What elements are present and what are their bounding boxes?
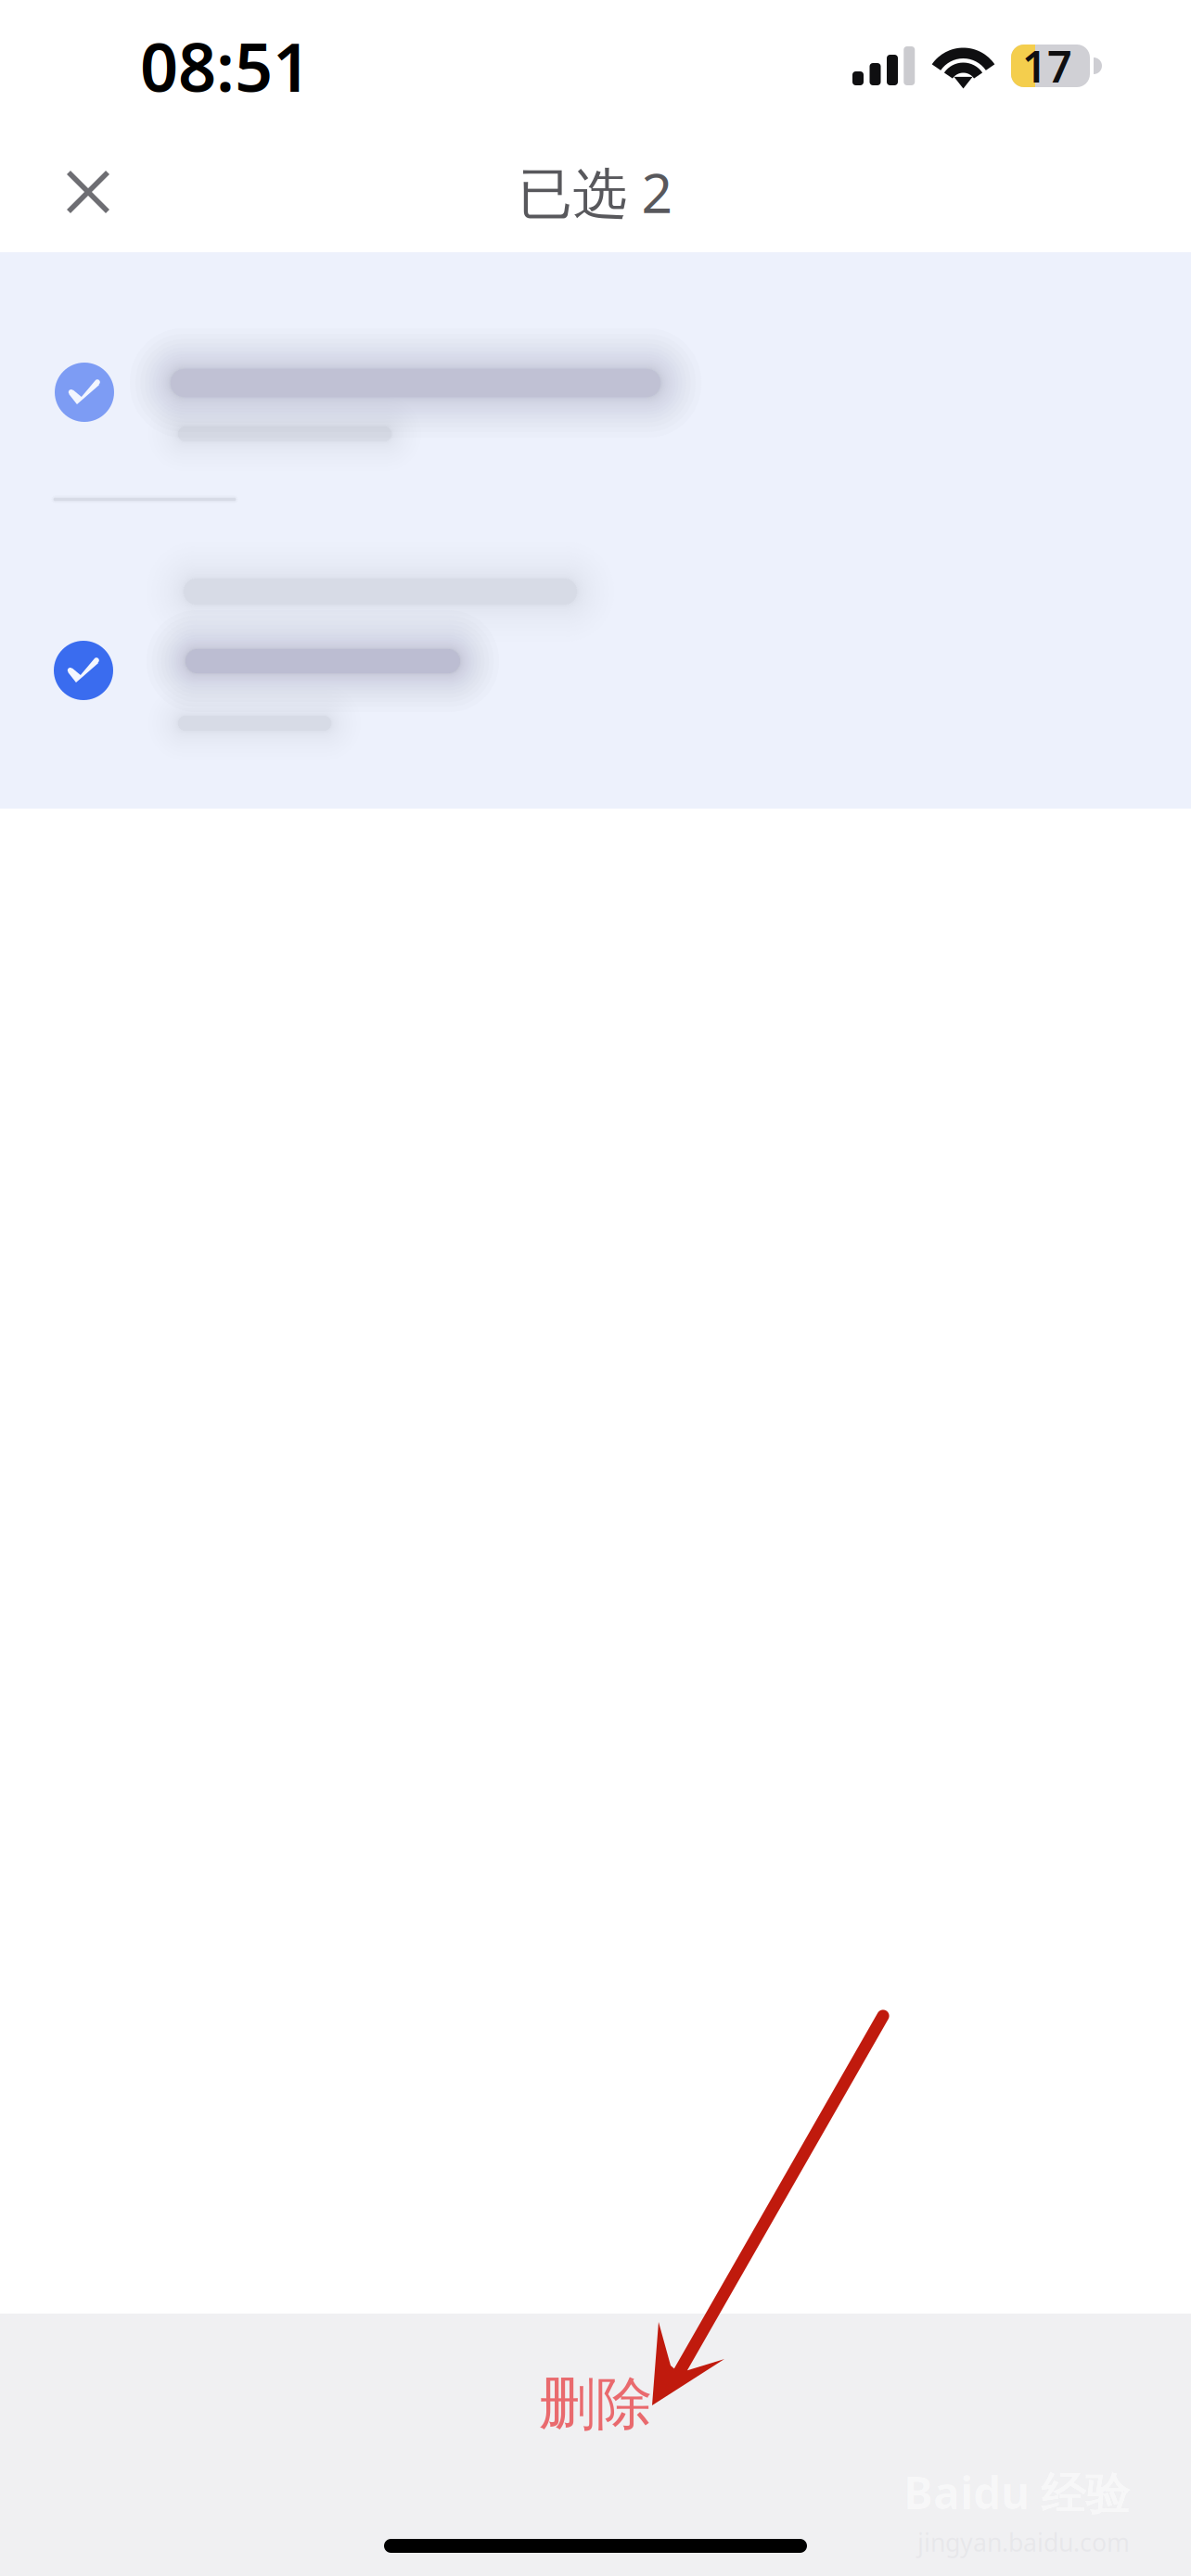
button[interactable]: Selected item 2: [54, 641, 113, 700]
staticText: 已选 2: [518, 156, 673, 228]
button[interactable]: Selected item 1: [55, 363, 114, 422]
button[interactable]: Close: [0, 135, 148, 249]
staticText: Baidu 经验: [903, 2463, 1130, 2522]
staticText: 08:51: [140, 22, 311, 110]
staticText: 删除: [539, 2369, 652, 2439]
staticText: 17: [1022, 37, 1072, 95]
button[interactable]: 删除: [0, 2345, 1191, 2463]
staticText: Baidu 经验: [903, 2463, 1130, 2522]
